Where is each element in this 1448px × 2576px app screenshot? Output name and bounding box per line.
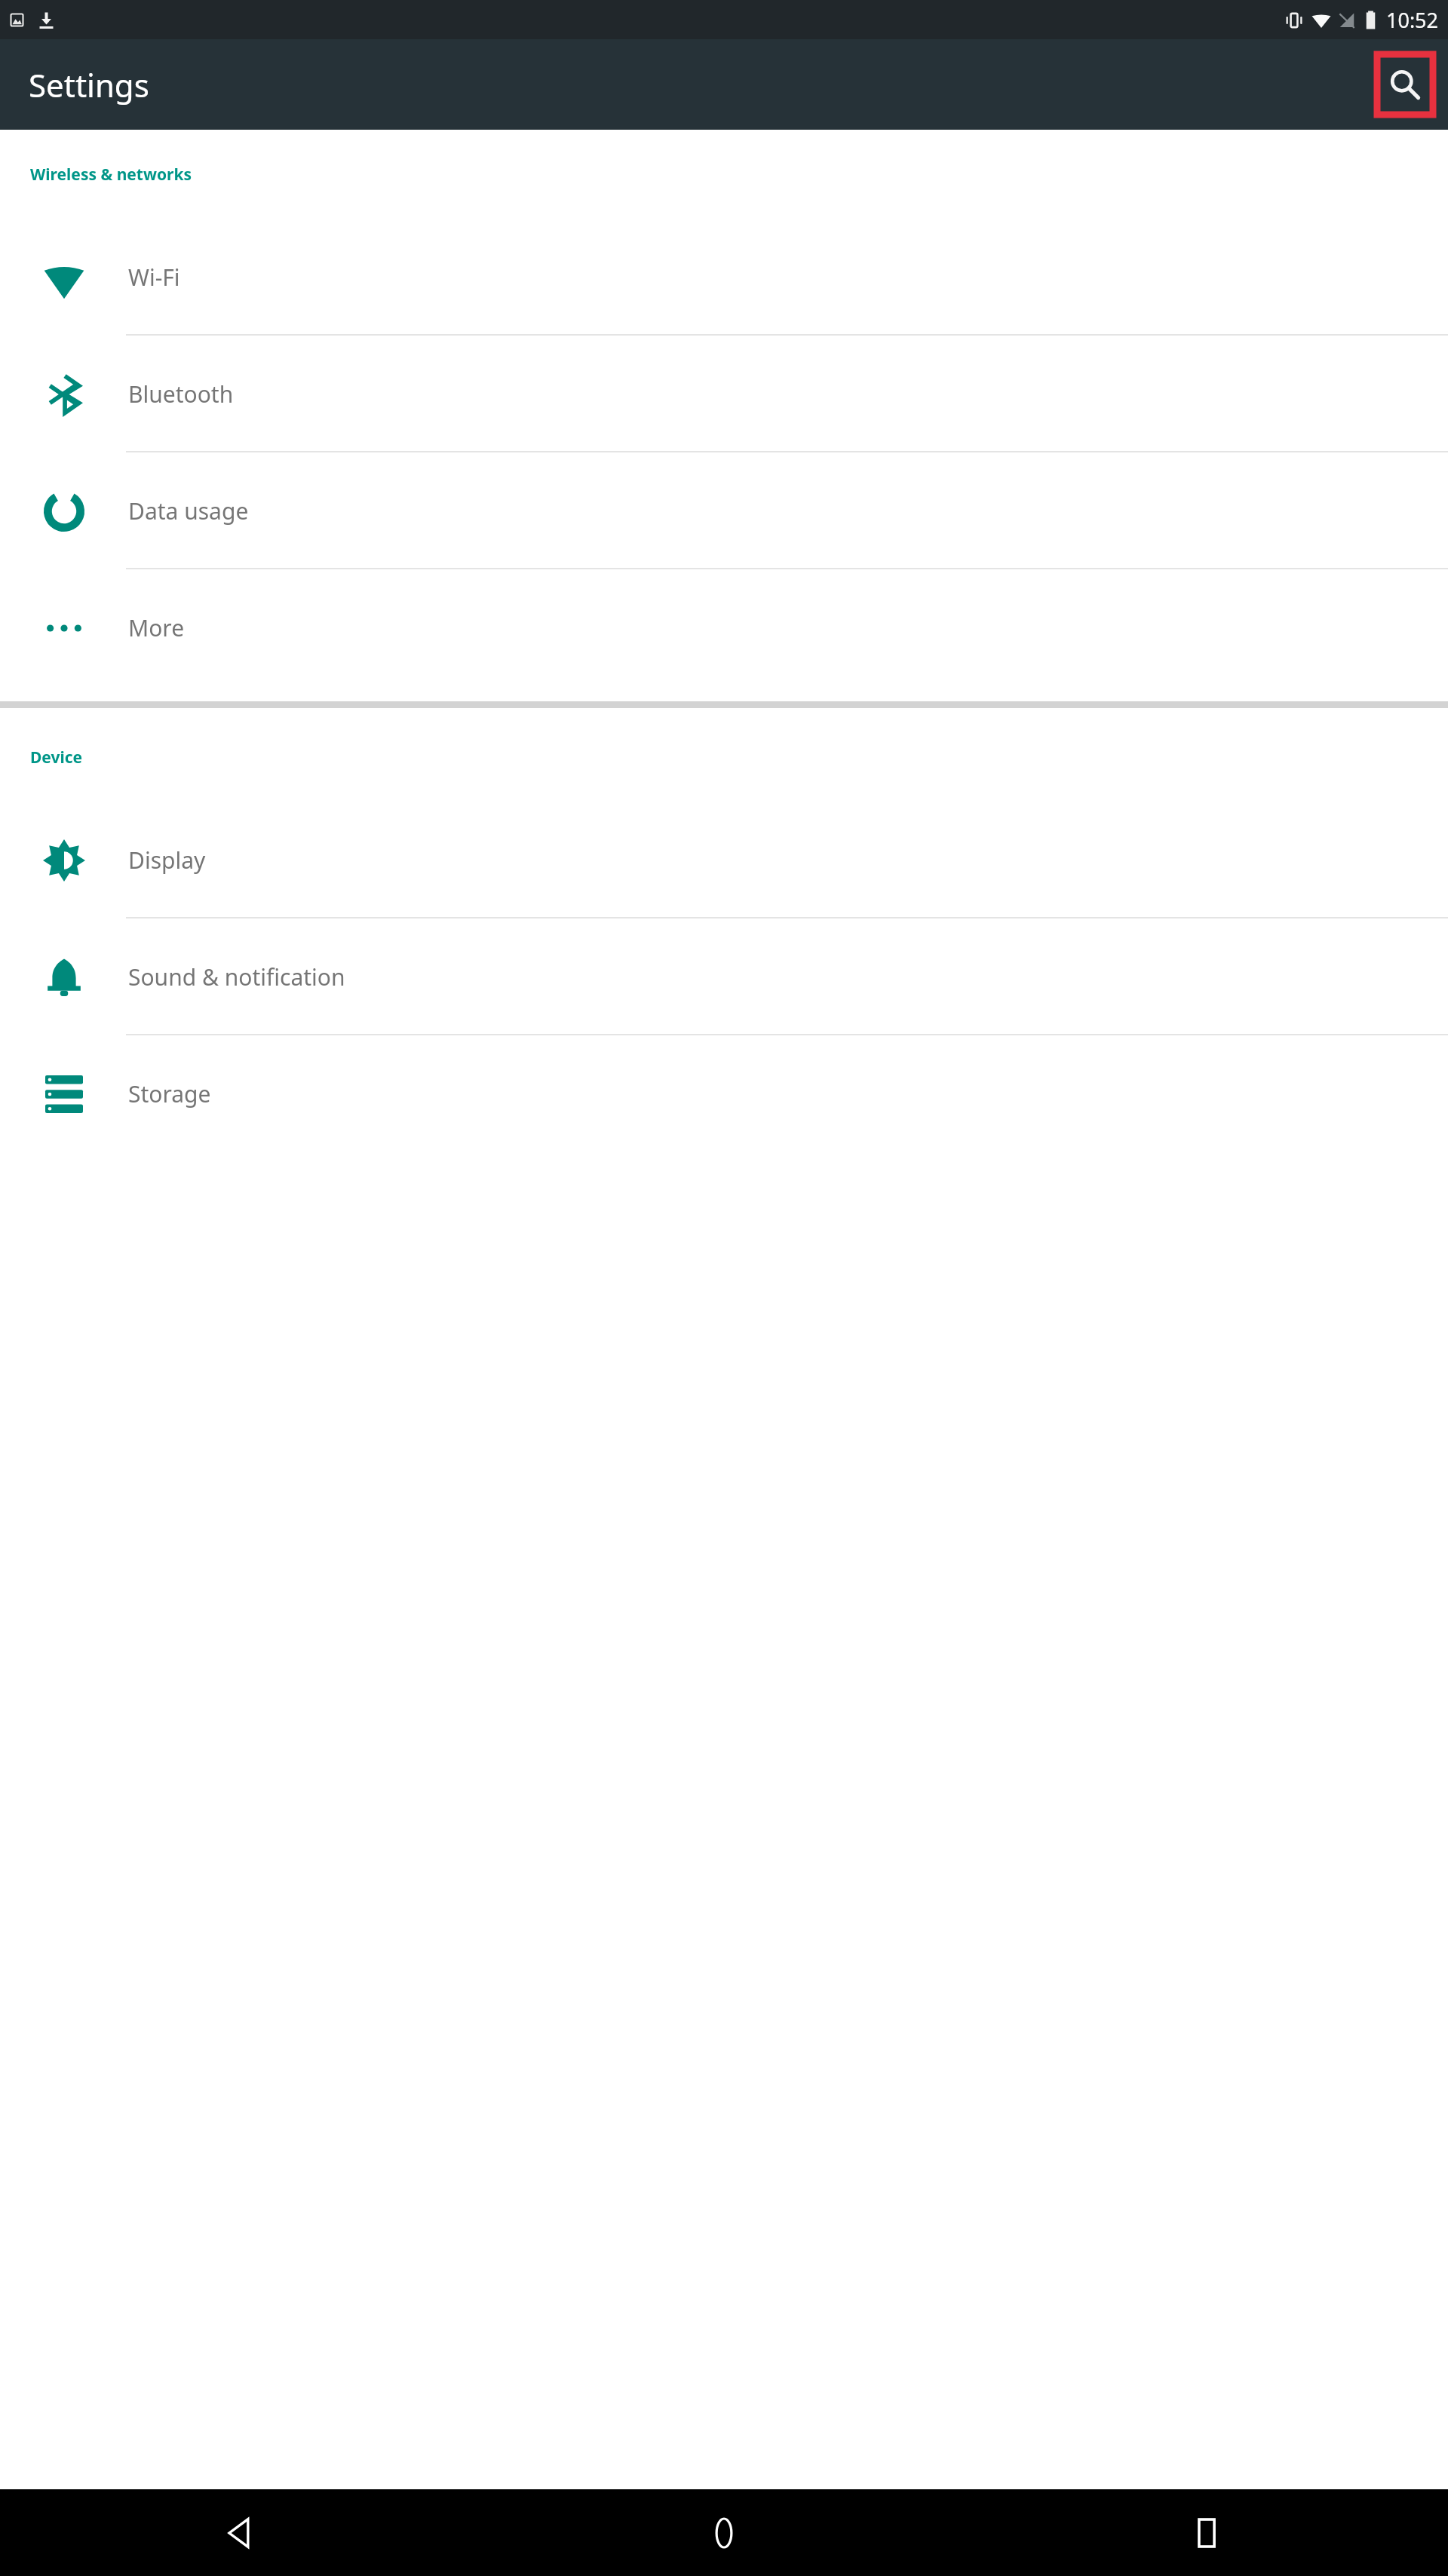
staticText: Wireless & networks xyxy=(30,164,192,186)
staticText: Data usage xyxy=(128,495,249,526)
button[interactable]: Bluetooth xyxy=(0,336,1448,452)
staticText: Sound & notification xyxy=(128,961,345,992)
staticText: 10:52 xyxy=(1386,6,1439,34)
button[interactable]: More xyxy=(0,569,1448,686)
staticText: Wi-Fi xyxy=(128,262,180,293)
staticText: More xyxy=(128,612,185,643)
staticText: Storage xyxy=(128,1078,211,1109)
staticText: Settings xyxy=(29,63,149,106)
button[interactable]: Home xyxy=(483,2489,965,2576)
button[interactable]: Sound & notification xyxy=(0,918,1448,1035)
button[interactable]: Search xyxy=(1377,54,1433,115)
staticText: Device xyxy=(30,747,83,768)
staticText: Display xyxy=(128,845,206,876)
button[interactable]: Data usage xyxy=(0,452,1448,569)
button[interactable]: Storage xyxy=(0,1035,1448,1152)
button[interactable]: Display xyxy=(0,802,1448,918)
staticText: Bluetooth xyxy=(128,379,234,409)
button[interactable]: Back xyxy=(0,2489,483,2576)
button[interactable]: Recent apps xyxy=(965,2489,1448,2576)
button[interactable]: Wi-Fi xyxy=(0,219,1448,336)
